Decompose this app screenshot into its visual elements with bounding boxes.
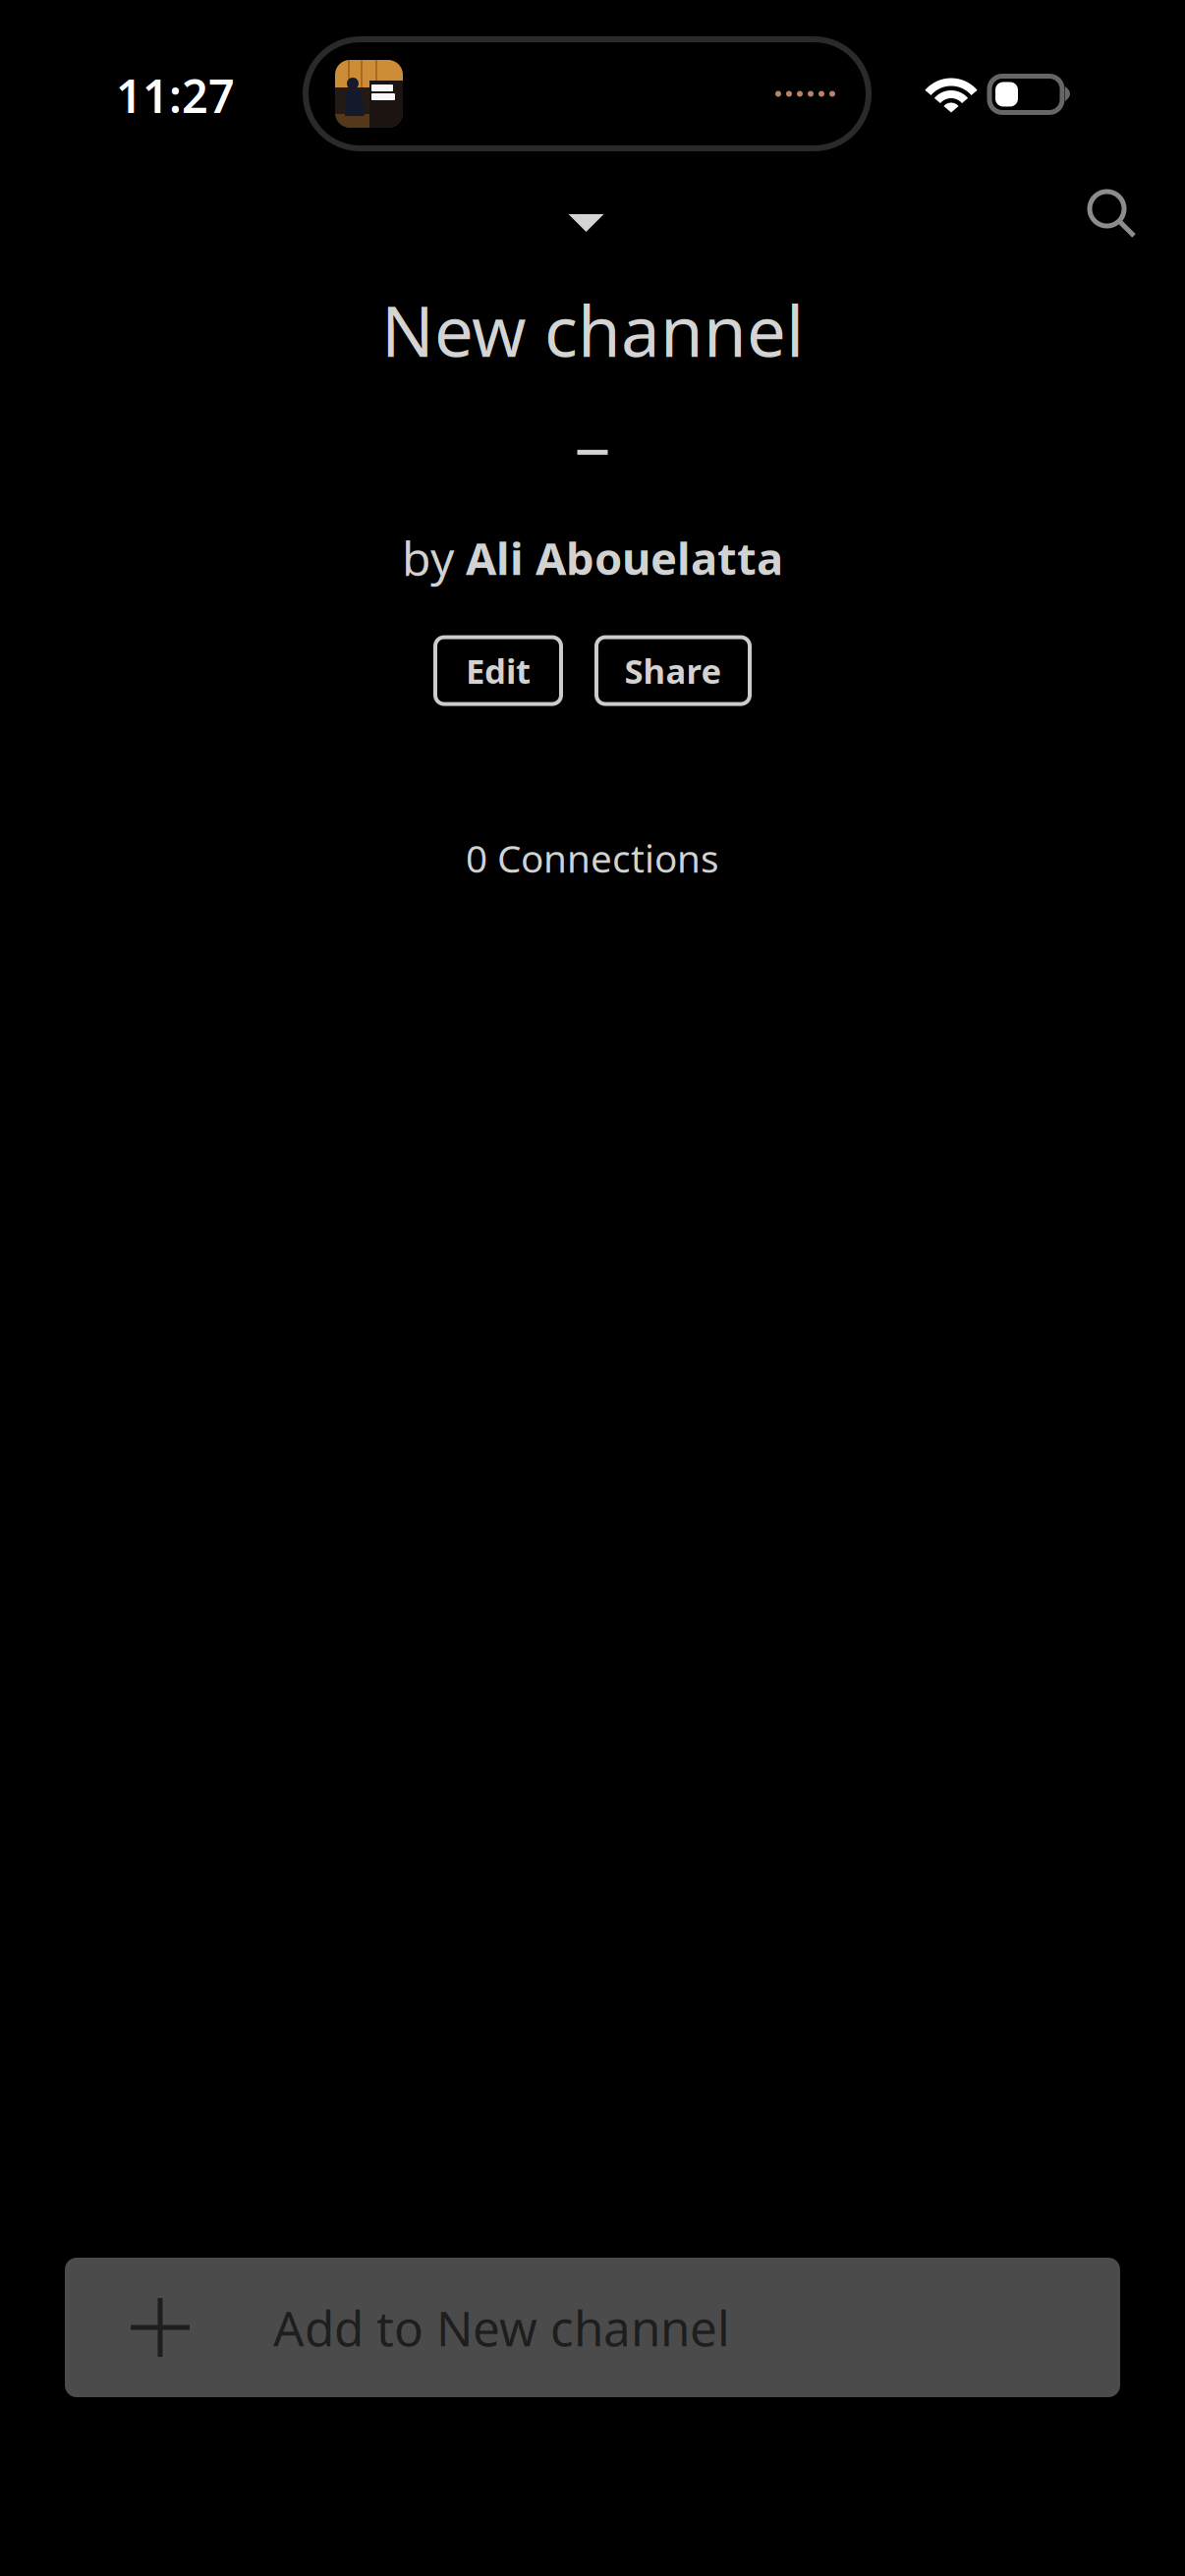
staticText: 0 Connections <box>466 833 719 883</box>
staticText: New channel <box>381 284 804 376</box>
staticText: Edit <box>466 648 531 693</box>
staticText: Share <box>624 648 722 693</box>
button[interactable]: Search <box>1047 157 1185 278</box>
button[interactable]: Add to New channel <box>0 2258 1185 2576</box>
staticText: 11:27 <box>116 65 235 126</box>
button[interactable]: Share <box>596 637 750 704</box>
button[interactable]: New channel <box>0 157 1185 455</box>
staticText: Ali Abouelatta <box>466 528 783 587</box>
button[interactable]: Edit <box>435 637 561 704</box>
staticText: Add to New channel <box>273 2295 730 2360</box>
staticText: by <box>402 526 466 589</box>
button[interactable]: by <box>402 526 783 589</box>
